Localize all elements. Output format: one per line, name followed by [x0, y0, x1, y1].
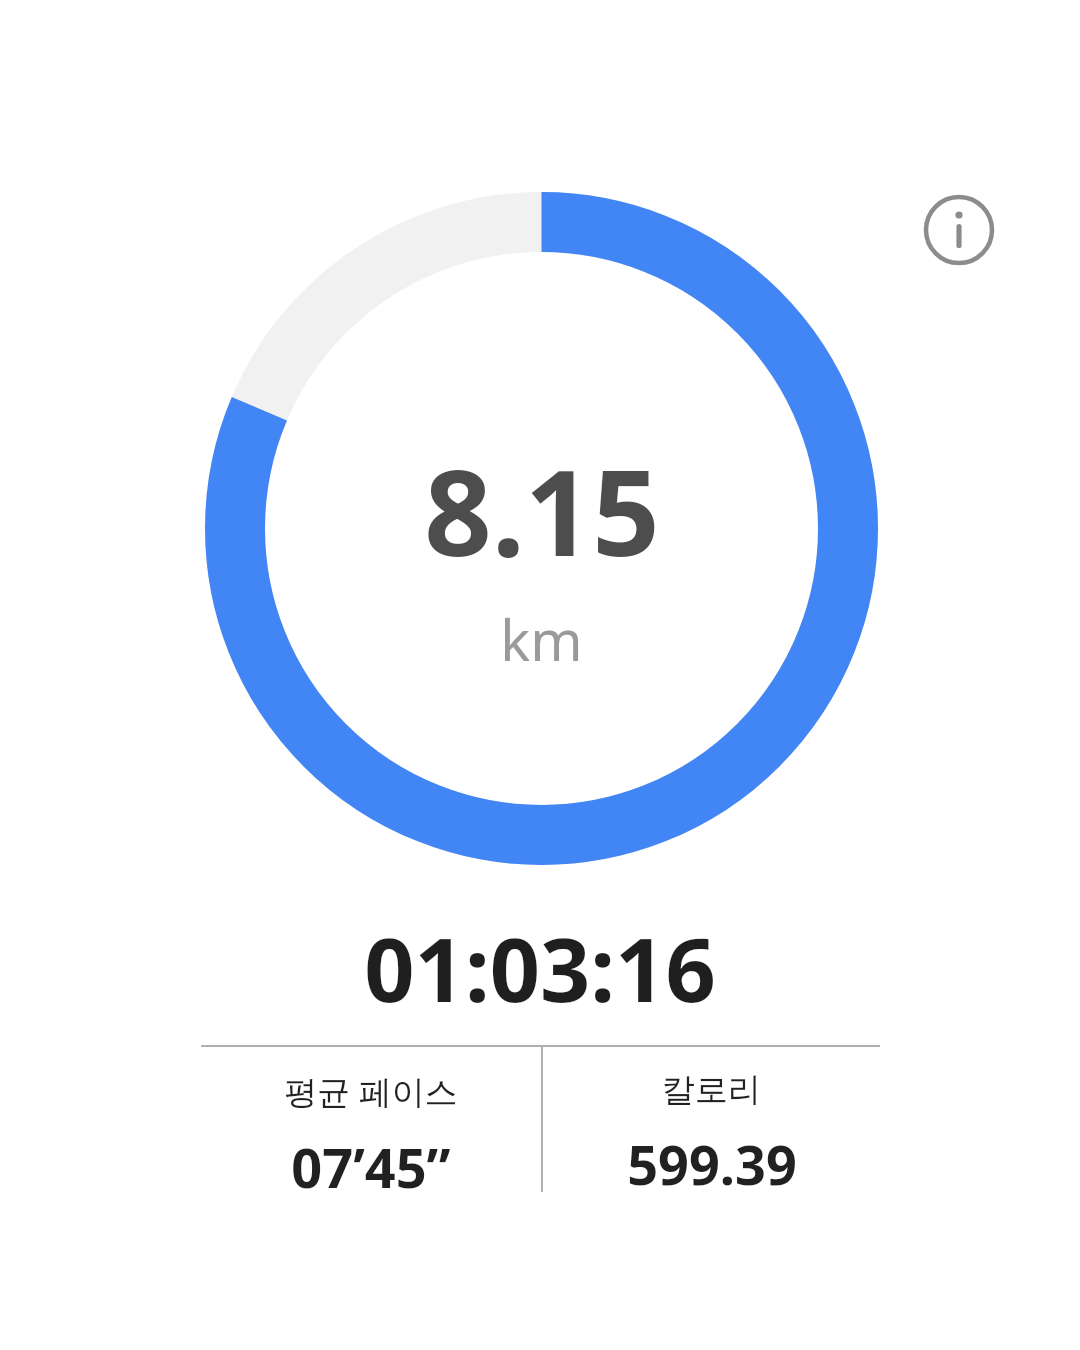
staticText: 8.15 — [424, 430, 660, 591]
staticText: km — [500, 601, 583, 677]
button[interactable]: Information — [921, 192, 997, 268]
staticText: 평균 페이스 — [284, 1069, 458, 1114]
staticText: 599.39 — [627, 1127, 797, 1195]
staticText: 칼로리 — [662, 1069, 761, 1111]
staticText: 07’45” — [291, 1130, 451, 1195]
staticText: 01:03:16 — [364, 908, 716, 1028]
button[interactable]: 평균 페이스 — [201, 1047, 541, 1195]
button[interactable]: 칼로리 — [543, 1047, 880, 1195]
